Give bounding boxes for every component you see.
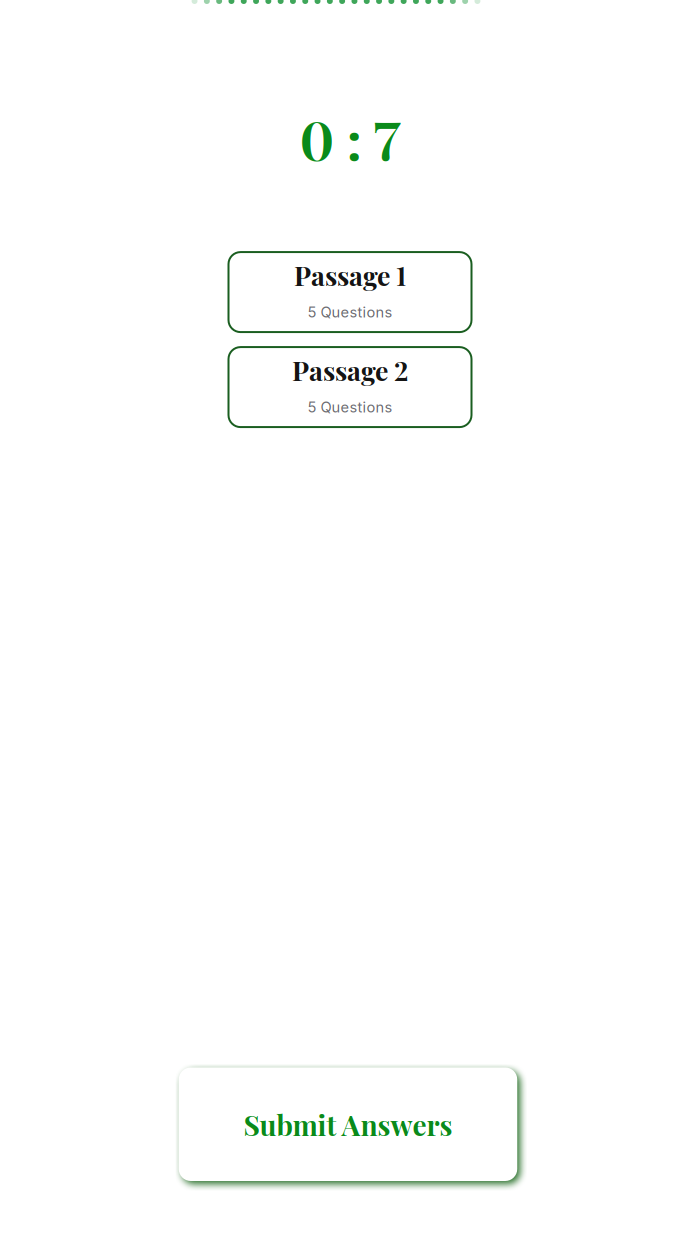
staticText: Passage 2 xyxy=(292,352,408,388)
staticText: 5 Questions xyxy=(307,398,392,416)
button[interactable]: Submit Answers xyxy=(179,1067,517,1181)
staticText: 0 : 7 xyxy=(299,103,400,174)
staticText: Passage 1 xyxy=(294,257,406,293)
button[interactable]: Passage 1 xyxy=(228,252,471,332)
button[interactable]: Passage 2 xyxy=(228,347,471,427)
staticText: 5 Questions xyxy=(307,303,392,321)
staticText: Submit Answers xyxy=(243,1106,452,1143)
